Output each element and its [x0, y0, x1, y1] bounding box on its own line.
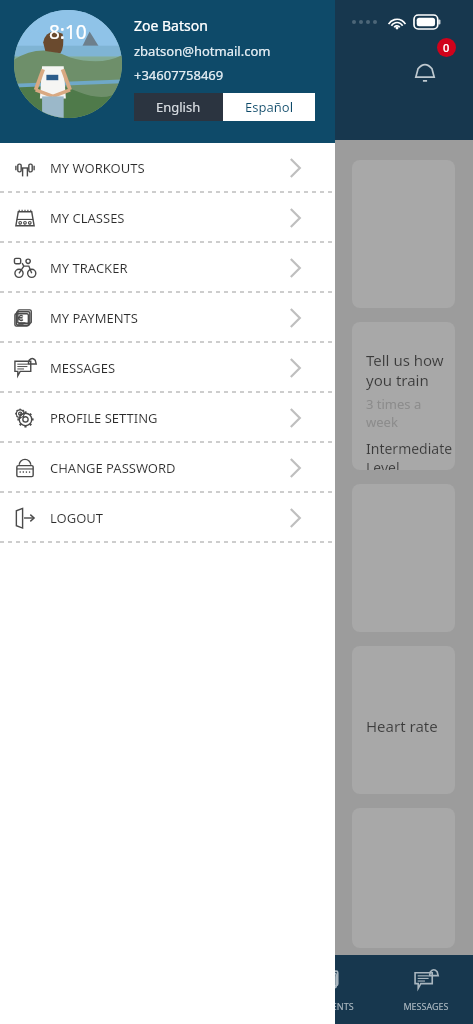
staticText: 3 times a week: [366, 395, 455, 431]
staticText: Español: [245, 98, 293, 116]
button[interactable]: MY CLASSES: [0, 193, 335, 242]
staticText: MY WORKOUTS: [50, 159, 145, 177]
staticText: CHANGE PASSWORD: [50, 459, 176, 477]
staticText: MY CLASSES: [50, 209, 125, 227]
staticText: MESSAGES: [50, 359, 116, 377]
button[interactable]: MESSAGES: [0, 343, 335, 392]
staticText: English: [156, 98, 201, 116]
staticText: LOGOUT: [50, 509, 104, 527]
staticText: Tell us how you train: [366, 350, 455, 390]
button[interactable]: Español: [223, 93, 315, 121]
staticText: 8:10: [49, 19, 87, 45]
button[interactable]: MY WORKOUTS: [0, 143, 335, 192]
staticText: Zoe Batson: [134, 16, 208, 35]
button[interactable]: MESSAGES: [378, 955, 473, 1024]
staticText: +34607758469: [134, 66, 224, 84]
button[interactable]: MY TRACKER: [0, 243, 335, 292]
button[interactable]: Profile photo: [14, 10, 122, 118]
staticText: MY PAYMENTS: [50, 309, 138, 327]
staticText: Heart rate: [366, 716, 438, 736]
staticText: MESSAGES: [403, 1000, 449, 1012]
staticText: Intermediate Level: [366, 439, 455, 470]
button[interactable]: LOGOUT: [0, 493, 335, 542]
button[interactable]: MY PAYMENTS: [0, 293, 335, 342]
button[interactable]: Notifications: [412, 38, 458, 84]
button[interactable]: PROFILE SETTING: [0, 393, 335, 442]
button[interactable]: English: [134, 93, 223, 121]
button[interactable]: CHANGE PASSWORD: [0, 443, 335, 492]
staticText: 0: [443, 40, 450, 55]
staticText: PROFILE SETTING: [50, 409, 158, 427]
button[interactable]: PAYMENTS: [283, 955, 378, 1024]
staticText: PAYMENTS: [308, 1000, 354, 1012]
staticText: MY TRACKER: [50, 259, 128, 277]
staticText: zbatson@hotmail.com: [134, 42, 271, 60]
